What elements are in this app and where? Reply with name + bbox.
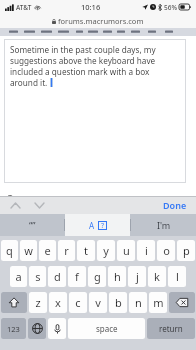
staticText: z [35, 295, 41, 310]
staticText: f [75, 269, 79, 284]
button[interactable]: c [69, 292, 87, 313]
button[interactable]: p [177, 240, 195, 261]
staticText: “” [29, 219, 36, 231]
staticText: Sometime in the past couple days, my [10, 44, 156, 55]
button[interactable]: Previous field [7, 197, 23, 213]
staticText: v [95, 295, 101, 310]
staticText: x [55, 295, 61, 310]
button[interactable]: return [147, 318, 195, 339]
staticText: t [84, 243, 88, 258]
button[interactable]: s [29, 266, 46, 287]
button[interactable]: “” [0, 214, 64, 236]
staticText: c [75, 295, 81, 310]
staticText: h [114, 269, 121, 284]
staticText: AT&T [16, 3, 32, 12]
staticText: q [6, 243, 13, 258]
staticText: g [94, 269, 101, 284]
button[interactable]: space [68, 318, 145, 339]
staticText: 10:16 [81, 2, 101, 12]
staticText: ? [101, 221, 105, 230]
button[interactable]: g [88, 266, 106, 287]
staticText: r [64, 243, 69, 258]
staticText: w [24, 243, 33, 258]
staticText: i [145, 243, 148, 258]
button[interactable]: 123 [1, 318, 26, 339]
button[interactable]: y [97, 240, 115, 261]
button[interactable]: n [129, 292, 147, 313]
button[interactable]: I'm [131, 214, 196, 236]
staticText: u [123, 243, 130, 258]
button[interactable]: z [29, 292, 47, 313]
button[interactable]: u [117, 240, 135, 261]
staticText: return [159, 323, 183, 334]
button[interactable]: Backspace [169, 292, 195, 313]
staticText: k [154, 269, 160, 284]
staticText: j [136, 269, 139, 284]
button[interactable]: q [1, 240, 18, 261]
button[interactable]: e [39, 240, 56, 261]
button[interactable]: x [49, 292, 67, 313]
staticText: space [96, 323, 118, 334]
button[interactable]: b [109, 292, 127, 313]
button[interactable]: d [48, 266, 66, 287]
staticText: d [54, 269, 61, 284]
button[interactable]: Next field [31, 197, 47, 213]
staticText: forums.macrumors.com [58, 16, 144, 26]
button[interactable]: A [65, 214, 130, 236]
staticText: included a question mark with a box [10, 66, 150, 77]
button[interactable]: r [58, 240, 75, 261]
staticText: A [89, 220, 95, 231]
button[interactable]: v [89, 292, 107, 313]
button[interactable]: l [168, 266, 186, 287]
staticText: 123 [7, 324, 20, 334]
staticText: l [176, 269, 179, 284]
button[interactable]: Dictation [48, 318, 66, 339]
button[interactable]: j [128, 266, 146, 287]
staticText: m [153, 295, 164, 310]
staticText: around it. [10, 77, 50, 88]
staticText: suggestions above the keyboard have [10, 55, 156, 66]
button[interactable]: Done [163, 199, 187, 211]
button[interactable]: i [137, 240, 155, 261]
button[interactable]: Change keyboard [28, 318, 46, 339]
button[interactable]: forums.macrumors.com [0, 14, 196, 28]
staticText: s [35, 269, 41, 284]
staticText: Tags: [8, 192, 26, 196]
staticText: p [183, 243, 190, 258]
staticText: I'm [157, 219, 171, 231]
staticText: n [135, 295, 142, 310]
button[interactable]: Shift [1, 292, 27, 313]
button[interactable]: h [108, 266, 126, 287]
button[interactable]: f [68, 266, 86, 287]
button[interactable]: a [10, 266, 27, 287]
staticText: e [44, 243, 51, 258]
staticText: y [103, 243, 109, 258]
button[interactable]: Sometime in the past couple days, my [4, 39, 186, 183]
staticText: b [115, 295, 122, 310]
staticText: 56% [164, 3, 177, 12]
button[interactable]: t [77, 240, 95, 261]
staticText: a [15, 269, 22, 284]
staticText: Done [163, 199, 187, 211]
staticText: o [163, 243, 170, 258]
button[interactable]: k [148, 266, 166, 287]
button[interactable]: w [20, 240, 37, 261]
button[interactable]: o [157, 240, 175, 261]
button[interactable]: m [149, 292, 167, 313]
